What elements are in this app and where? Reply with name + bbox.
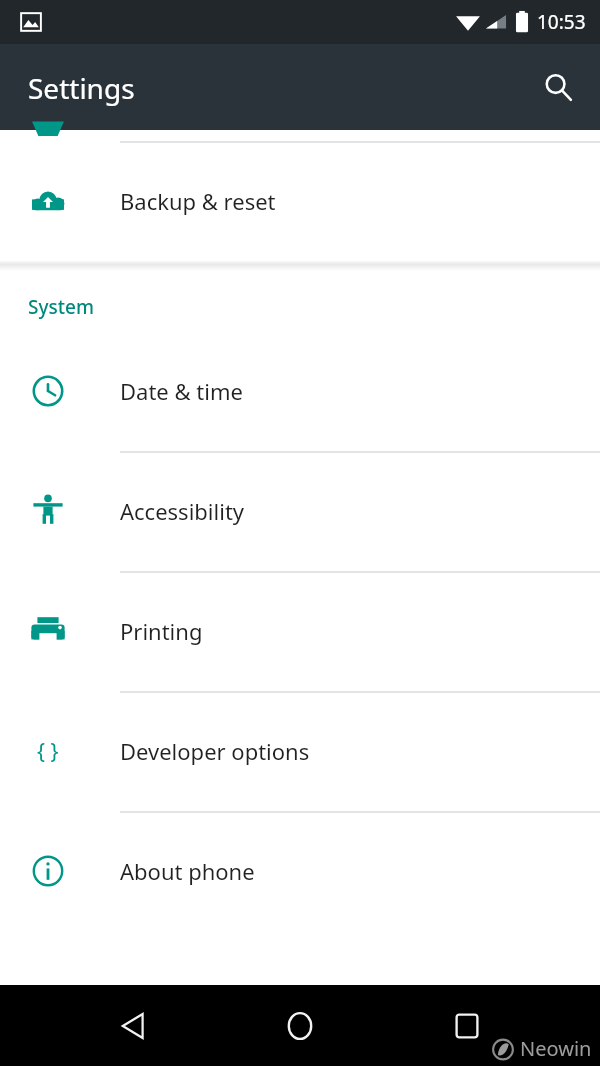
button[interactable]: Back: [100, 993, 166, 1059]
button[interactable]: [0, 130, 600, 141]
staticText: About phone: [120, 856, 255, 886]
staticText: Neowin: [520, 1035, 592, 1062]
staticText: System: [28, 294, 94, 320]
staticText: Accessibility: [120, 496, 245, 526]
staticText: Printing: [120, 616, 203, 646]
staticText: Backup & reset: [120, 186, 276, 216]
button[interactable]: Home: [267, 993, 333, 1059]
staticText: Developer options: [120, 736, 310, 766]
staticText: Date & time: [120, 376, 243, 406]
button[interactable]: Date & time: [0, 331, 600, 451]
staticText: { }: [37, 737, 59, 766]
button[interactable]: Backup & reset: [0, 141, 600, 261]
staticText: Settings: [28, 69, 135, 107]
button[interactable]: Printing: [0, 571, 600, 691]
button[interactable]: Recent apps: [434, 993, 500, 1059]
staticText: 10:53: [537, 9, 586, 35]
button[interactable]: Search: [532, 61, 584, 113]
button[interactable]: Accessibility: [0, 451, 600, 571]
button[interactable]: { }: [0, 691, 600, 811]
button[interactable]: About phone: [0, 811, 600, 931]
